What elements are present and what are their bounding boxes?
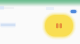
button[interactable]: Status bbox=[69, 9, 77, 14]
button[interactable]: Selected item bbox=[0, 22, 16, 27]
button[interactable]: Featured card bbox=[45, 15, 73, 36]
